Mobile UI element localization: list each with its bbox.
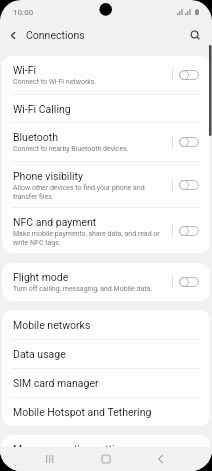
staticText: Flight mode — [13, 271, 69, 283]
button[interactable]: Search — [183, 23, 207, 47]
button[interactable]: Home — [91, 447, 121, 471]
button[interactable]: Mobile Hotspot and Tethering — [2, 398, 210, 426]
staticText: NFC and payment — [13, 216, 97, 228]
staticText: Phone visibility — [13, 170, 83, 182]
button[interactable]: NFC and payment — [2, 208, 210, 253]
button[interactable]: More connection settings — [2, 435, 210, 463]
button[interactable]: Toggle — [179, 137, 199, 147]
staticText: Turn off calling, messaging, and Mobile … — [13, 285, 153, 293]
staticText: Wi-Fi — [13, 64, 37, 76]
button[interactable]: Back — [0, 22, 26, 48]
button[interactable]: SIM card manager — [2, 369, 210, 397]
button[interactable]: Toggle — [179, 277, 199, 287]
button[interactable]: Wi-Fi — [2, 56, 210, 94]
button[interactable]: Toggle — [179, 70, 199, 80]
button[interactable]: Toggle — [179, 180, 199, 190]
staticText: Mobile Hotspot and Tethering — [13, 406, 152, 418]
staticText: Connect to nearby Bluetooth devices. — [13, 145, 129, 153]
staticText: Allow other devices to find your phone a… — [13, 184, 167, 200]
staticText: Data usage — [13, 348, 66, 360]
button[interactable]: Bluetooth — [2, 123, 210, 161]
button[interactable]: Mobile networks — [2, 310, 210, 339]
button[interactable]: Data usage — [2, 340, 210, 368]
staticText: Connect to Wi-Fi networks. — [13, 78, 97, 86]
staticText: 10:00 — [13, 8, 34, 17]
staticText: SIM card manager — [13, 377, 99, 389]
staticText: Connections — [26, 29, 85, 41]
staticText: Bluetooth — [13, 131, 58, 143]
staticText: More connection settings — [13, 443, 132, 455]
button[interactable]: Back — [145, 447, 175, 471]
button[interactable]: Recent apps — [34, 447, 64, 471]
button[interactable]: Toggle — [179, 226, 199, 236]
button[interactable]: Phone visibility — [2, 162, 210, 207]
staticText: Wi-Fi Calling — [13, 103, 71, 115]
staticText: Mobile networks — [13, 319, 91, 331]
button[interactable]: Wi-Fi Calling — [2, 95, 210, 122]
button[interactable]: Flight mode — [2, 263, 210, 301]
staticText: Make mobile payments, share data, and re… — [13, 230, 167, 246]
